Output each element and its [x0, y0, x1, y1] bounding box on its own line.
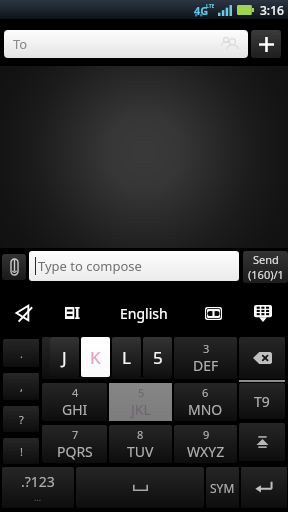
button[interactable]: 7	[42, 425, 107, 463]
staticText: JKL	[131, 400, 151, 419]
button[interactable]: Voice input	[197, 294, 229, 332]
button[interactable]: Space	[76, 467, 204, 508]
staticText: 8	[137, 427, 144, 442]
staticText: Send	[253, 252, 279, 267]
button[interactable]: 3	[174, 337, 237, 379]
button[interactable]: !	[3, 438, 39, 464]
button[interactable]: To	[4, 30, 248, 58]
button[interactable]: Caps lock	[239, 423, 285, 461]
staticText: .?123	[21, 472, 55, 491]
button[interactable]: ?	[3, 406, 39, 432]
staticText: K	[90, 346, 101, 369]
staticText: (160)/1	[248, 267, 284, 282]
button[interactable]: Keyboard mode	[56, 294, 88, 332]
button[interactable]: 2	[109, 337, 172, 379]
staticText: ABC	[127, 356, 154, 375]
button[interactable]: J	[50, 337, 79, 377]
button[interactable]: SYM	[206, 467, 239, 508]
staticText: 3	[203, 341, 210, 356]
staticText: English	[120, 304, 168, 323]
button[interactable]: 9	[174, 425, 237, 463]
staticText: L	[122, 346, 131, 369]
staticText: MNO	[188, 400, 223, 419]
button[interactable]: 5	[143, 337, 172, 377]
staticText: J	[62, 346, 67, 369]
button[interactable]: Type to compose	[29, 251, 239, 281]
button[interactable]: L	[112, 337, 141, 377]
button[interactable]: K	[81, 337, 110, 377]
button[interactable]: Add recipient	[251, 30, 281, 58]
staticText: ...	[34, 491, 42, 503]
button[interactable]: .	[3, 339, 39, 367]
button[interactable]: 6	[174, 383, 237, 421]
staticText: SYM	[210, 480, 235, 496]
staticText: 5	[153, 346, 163, 369]
staticText: LTE	[206, 3, 215, 10]
button[interactable]: ,	[3, 373, 39, 400]
button[interactable]: .?123	[2, 467, 74, 508]
button[interactable]: 8	[109, 425, 172, 463]
button[interactable]: Sound off	[8, 294, 40, 332]
staticText: DEF	[193, 356, 219, 375]
staticText: 6	[202, 385, 209, 400]
staticText: GHI	[62, 400, 88, 419]
staticText: 7	[72, 427, 79, 442]
staticText: !	[20, 444, 23, 459]
staticText: 4G	[194, 3, 209, 18]
staticText: ,	[20, 379, 23, 394]
button[interactable]: T9	[239, 383, 285, 419]
button[interactable]: Attach	[2, 254, 26, 280]
staticText: T9	[254, 392, 270, 411]
button[interactable]: Enter	[241, 467, 287, 508]
button[interactable]: 5	[109, 383, 172, 421]
staticText: 2	[137, 341, 144, 356]
button[interactable]: Send	[243, 251, 288, 283]
staticText: ?	[19, 412, 24, 427]
staticText: PQRS	[57, 442, 93, 461]
staticText: Type to compose	[38, 257, 142, 275]
staticText: 4	[72, 385, 79, 400]
staticText: 5	[138, 385, 145, 400]
button[interactable]: Backspace	[239, 337, 285, 379]
button[interactable]: English	[110, 294, 178, 332]
button[interactable]	[42, 337, 107, 379]
staticText: .	[20, 346, 23, 361]
staticText: WXYZ	[187, 442, 225, 461]
button[interactable]: Hide keyboard	[247, 294, 279, 332]
staticText: TUV	[127, 442, 154, 461]
staticText: 3:16	[260, 2, 284, 18]
button[interactable]: 4	[42, 383, 107, 421]
staticText: To	[13, 35, 28, 53]
staticText: 9	[203, 427, 210, 442]
